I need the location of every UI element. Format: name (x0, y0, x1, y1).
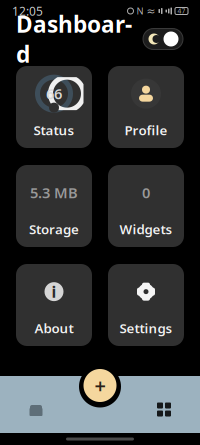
button[interactable]: Widgets (136, 389, 192, 429)
staticText: Profile (124, 121, 167, 139)
button[interactable]: Settings (108, 264, 184, 346)
staticText: Storage (29, 220, 79, 238)
button[interactable]: Profile (108, 66, 184, 148)
staticText: 12:05 (12, 3, 43, 19)
staticText: 5.3 MB (30, 183, 78, 202)
staticText: About (34, 319, 73, 337)
staticText: Dashboard (16, 9, 132, 69)
button[interactable]: 0 (108, 165, 184, 247)
staticText: 47 (177, 7, 185, 15)
staticText: Widgets (119, 220, 172, 238)
staticText: 66 (46, 84, 62, 103)
staticText: Status (33, 121, 74, 139)
button[interactable]: 5.3 MB (16, 165, 92, 247)
staticText: N (136, 5, 143, 17)
staticText: + (94, 372, 105, 399)
button[interactable]: 66 (16, 66, 92, 148)
staticText: 0 (142, 183, 150, 202)
button[interactable]: i (16, 264, 92, 346)
staticText: Settings (119, 319, 172, 337)
staticText: i (51, 281, 56, 302)
staticText: ≈ (146, 5, 155, 17)
button[interactable]: Home (8, 389, 64, 429)
button[interactable]: Toggle dark mode (142, 27, 184, 51)
button[interactable]: Add (82, 367, 118, 403)
